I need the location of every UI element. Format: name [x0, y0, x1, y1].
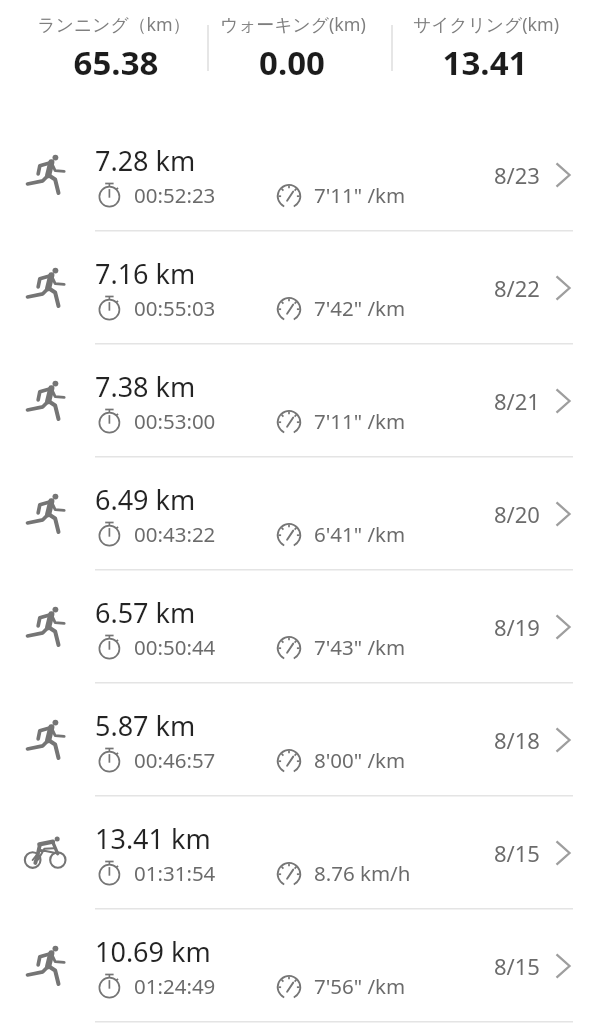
button[interactable]: サイクリング(km)	[392, 0, 593, 118]
staticText: 0.00	[200, 40, 384, 85]
staticText: 7'11" /km	[314, 181, 406, 209]
other: Open activity detail	[550, 953, 576, 979]
staticText: 8'00" /km	[314, 746, 406, 774]
staticText: ランニング（km）	[14, 12, 214, 36]
button[interactable]: 7.38 km	[0, 344, 593, 457]
button[interactable]: 6.57 km	[0, 570, 593, 683]
staticText: 7'43" /km	[314, 633, 406, 661]
button[interactable]: 7.28 km	[0, 118, 593, 231]
button[interactable]: 13.41 km	[0, 796, 593, 909]
staticText: 6.49 km	[95, 481, 196, 518]
staticText: 01:31:54	[134, 859, 216, 887]
staticText: 00:43:22	[134, 520, 216, 548]
staticText: 7'56" /km	[314, 972, 406, 1000]
staticText: 00:52:23	[134, 181, 216, 209]
staticText: 65.38	[16, 40, 216, 85]
staticText: 7.16 km	[95, 255, 196, 292]
staticText: 8/19	[494, 612, 540, 642]
button[interactable]: 6.49 km	[0, 457, 593, 570]
staticText: 01:24:49	[134, 972, 216, 1000]
button[interactable]: 7.16 km	[0, 231, 593, 344]
button[interactable]: 10.69 km	[0, 909, 593, 1022]
other: Open activity detail	[550, 162, 576, 188]
staticText: 13.41	[385, 40, 585, 85]
staticText: ウォーキング(km)	[201, 12, 385, 36]
staticText: 8/20	[494, 499, 540, 529]
button[interactable]: ランニング（km）	[0, 0, 208, 118]
staticText: 13.41 km	[95, 820, 211, 857]
other: Open activity detail	[550, 501, 576, 527]
staticText: 8/18	[494, 725, 540, 755]
staticText: 6'41" /km	[314, 520, 406, 548]
staticText: 10.69 km	[95, 933, 211, 970]
other: Open activity detail	[550, 727, 576, 753]
staticText: 8/23	[494, 160, 540, 190]
staticText: 8/21	[494, 386, 540, 416]
staticText: 7.28 km	[95, 142, 196, 179]
staticText: 7.38 km	[95, 368, 196, 405]
staticText: 6.57 km	[95, 594, 196, 631]
staticText: 8.76 km/h	[314, 859, 411, 887]
other: Open activity detail	[550, 388, 576, 414]
staticText: 7'11" /km	[314, 407, 406, 435]
other: Open activity detail	[550, 840, 576, 866]
staticText: 8/22	[494, 273, 540, 303]
other: Open activity detail	[550, 614, 576, 640]
staticText: サイクリング(km)	[386, 12, 586, 36]
staticText: 00:53:00	[134, 407, 216, 435]
staticText: 7'42" /km	[314, 294, 406, 322]
staticText: 00:55:03	[134, 294, 216, 322]
staticText: 5.87 km	[95, 707, 196, 744]
staticText: 00:50:44	[134, 633, 216, 661]
button[interactable]: ウォーキング(km)	[208, 0, 392, 118]
staticText: 00:46:57	[134, 746, 216, 774]
staticText: 8/15	[494, 838, 540, 868]
button[interactable]: 5.87 km	[0, 683, 593, 796]
other: Open activity detail	[550, 275, 576, 301]
staticText: 8/15	[494, 951, 540, 981]
